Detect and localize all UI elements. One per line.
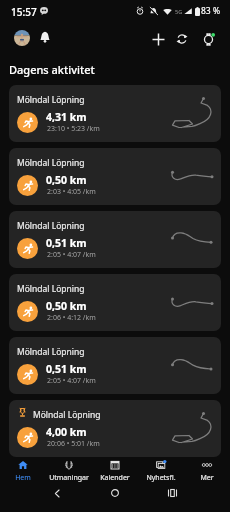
button[interactable]: Hem bbox=[0, 455, 46, 485]
button[interactable]: Mer bbox=[184, 455, 230, 485]
button[interactable]: Back bbox=[45, 481, 69, 505]
button[interactable]: Recent apps bbox=[160, 481, 184, 505]
staticText: 23:10 • 5:23 /km bbox=[47, 124, 100, 134]
button[interactable]: Mölndal Löpning bbox=[9, 211, 221, 268]
staticText: Mölndal Löpning bbox=[17, 94, 85, 106]
button[interactable]: Mölndal Löpning bbox=[9, 337, 221, 394]
button[interactable]: Sync bbox=[171, 28, 193, 50]
staticText: 2:05 • 4:07 /km bbox=[47, 376, 96, 386]
button[interactable]: Connected watch bbox=[197, 28, 219, 50]
staticText: 0,51 km bbox=[46, 362, 87, 376]
button[interactable]: Kalender bbox=[92, 455, 138, 485]
staticText: 0,50 km bbox=[46, 173, 87, 187]
staticText: Mölndal Löpning bbox=[17, 157, 85, 169]
staticText: 2:05 • 4:07 /km bbox=[47, 250, 96, 260]
staticText: 15:57 bbox=[11, 5, 37, 19]
button[interactable]: Mölndal Löpning bbox=[9, 274, 221, 331]
button[interactable]: Mölndal Löpning bbox=[9, 400, 221, 457]
staticText: Mölndal Löpning bbox=[17, 346, 85, 358]
button[interactable]: Mölndal Löpning bbox=[9, 148, 221, 205]
staticText: Mölndal Löpning bbox=[17, 220, 85, 232]
staticText: Mer bbox=[200, 473, 214, 483]
staticText: 2:03 • 4:05 /km bbox=[47, 187, 96, 197]
button[interactable]: Notifications bbox=[35, 27, 55, 47]
button[interactable]: Nyhetsfl. bbox=[138, 455, 184, 485]
staticText: Utmaningar bbox=[49, 473, 89, 483]
button[interactable]: Add activity bbox=[147, 28, 169, 50]
staticText: 4,00 km bbox=[46, 425, 87, 439]
staticText: 4,31 km bbox=[46, 110, 87, 124]
staticText: Dagens aktivitet bbox=[9, 62, 95, 77]
staticText: 20:06 • 5:01 /km bbox=[47, 439, 100, 449]
button[interactable]: Profile bbox=[14, 30, 30, 46]
staticText: 0,50 km bbox=[46, 299, 87, 313]
staticText: 5G bbox=[175, 8, 183, 15]
button[interactable]: Home bbox=[103, 481, 127, 505]
button[interactable]: Mölndal Löpning bbox=[9, 85, 221, 142]
staticText: Mölndal Löpning bbox=[33, 409, 101, 421]
staticText: Nyhetsfl. bbox=[146, 473, 176, 483]
staticText: Hem bbox=[15, 473, 31, 483]
staticText: Kalender bbox=[100, 473, 130, 483]
staticText: 2:06 • 4:12 /km bbox=[47, 313, 96, 323]
staticText: 83 % bbox=[201, 5, 220, 17]
staticText: 0,51 km bbox=[46, 236, 87, 250]
staticText: Mölndal Löpning bbox=[17, 283, 85, 295]
button[interactable]: Utmaningar bbox=[46, 455, 92, 485]
